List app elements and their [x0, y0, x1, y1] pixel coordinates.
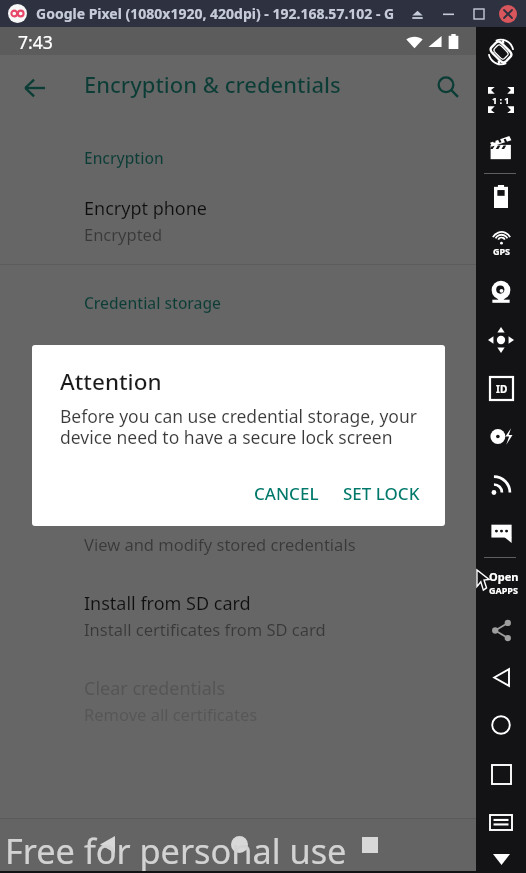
- button[interactable]: Search: [425, 64, 471, 110]
- button[interactable]: Cellular: [476, 460, 526, 508]
- button[interactable]: CANCEL: [242, 472, 331, 514]
- staticText: Free for personal use: [5, 827, 347, 873]
- button[interactable]: Install from SD card: [0, 577, 476, 647]
- button[interactable]: Record screen: [476, 124, 526, 172]
- staticText: Encrypt phone: [84, 196, 207, 221]
- staticText: Install from SD card: [84, 591, 251, 616]
- button[interactable]: Menu: [476, 798, 526, 846]
- staticText: Google Pixel (1080x1920, 420dpi) - 192.1…: [36, 4, 395, 23]
- button[interactable]: SET LOCK: [331, 472, 432, 514]
- button[interactable]: Camera: [476, 268, 526, 316]
- staticText: Encryption: [84, 147, 164, 168]
- button[interactable]: Fingerprint: [476, 364, 526, 412]
- staticText: Before you can use credential storage, y…: [60, 404, 417, 449]
- button[interactable]: Home: [217, 818, 261, 871]
- button[interactable]: Recents: [476, 750, 526, 798]
- staticText: Encryption & credentials: [84, 69, 341, 99]
- staticText: Storage type: [84, 341, 192, 366]
- staticText: Credential storage: [84, 292, 221, 313]
- button[interactable]: Maximize: [468, 3, 490, 25]
- button[interactable]: Battery: [476, 172, 526, 220]
- button[interactable]: Back: [11, 65, 57, 111]
- button[interactable]: Encrypt phone: [0, 182, 476, 252]
- staticText: Attention: [60, 366, 162, 397]
- button[interactable]: Phone: [476, 508, 526, 556]
- button[interactable]: Close: [499, 5, 517, 23]
- staticText: Hardware-backed: [84, 368, 222, 390]
- staticText: User credentials: [84, 506, 221, 531]
- button[interactable]: Rotate: [476, 28, 526, 76]
- staticText: 7:43: [18, 30, 53, 54]
- button[interactable]: Trusted credentials: [0, 407, 476, 477]
- staticText: Remove all certificates: [84, 703, 258, 725]
- staticText: View and modify stored credentials: [84, 533, 356, 555]
- staticText: Install certificates from SD card: [84, 618, 326, 640]
- button[interactable]: User credentials: [0, 492, 476, 562]
- staticText: Clear credentials: [84, 676, 226, 701]
- staticText: Encrypted: [84, 223, 163, 245]
- staticText: GAPPS: [489, 584, 518, 596]
- staticText: GPS: [493, 245, 511, 257]
- staticText: ID: [496, 382, 508, 396]
- button[interactable]: Virtual sensors: [476, 412, 526, 460]
- staticText: Trusted credentials: [84, 421, 246, 446]
- button[interactable]: Location: [476, 220, 526, 268]
- button[interactable]: Zoom to fit: [476, 76, 526, 124]
- button[interactable]: More: [476, 835, 526, 873]
- button[interactable]: Minimize: [437, 3, 459, 25]
- button[interactable]: Directional pad: [476, 316, 526, 364]
- button[interactable]: Back: [476, 653, 526, 701]
- button[interactable]: Home: [476, 701, 526, 749]
- button[interactable]: Back: [85, 818, 129, 871]
- button[interactable]: Open GApps: [476, 557, 526, 605]
- button[interactable]: Storage type: [0, 327, 476, 397]
- button[interactable]: Recents: [348, 818, 392, 871]
- staticText: CANCEL: [254, 482, 319, 505]
- staticText: Open: [489, 569, 519, 584]
- button[interactable]: Eject: [406, 3, 428, 25]
- staticText: SET LOCK: [343, 482, 420, 505]
- staticText: 1 : 1: [492, 94, 510, 106]
- button[interactable]: Share: [476, 606, 526, 654]
